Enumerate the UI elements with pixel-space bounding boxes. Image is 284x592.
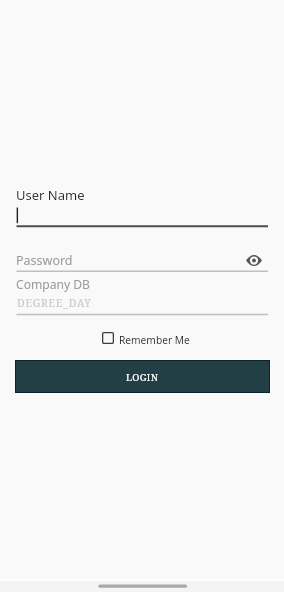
button[interactable]: Remember Me <box>100 330 190 346</box>
button[interactable]: Show password <box>242 249 266 270</box>
staticText: User Name <box>16 186 85 204</box>
staticText: Password <box>16 252 73 269</box>
staticText: DEGREE_DAY <box>17 296 92 310</box>
staticText: Company DB <box>16 276 90 292</box>
button[interactable]: Password <box>16 252 268 273</box>
button[interactable]: User Name <box>16 186 268 228</box>
button[interactable]: LOGIN <box>15 360 270 393</box>
staticText: Remember Me <box>119 333 190 347</box>
button[interactable]: Company DB <box>16 276 268 316</box>
staticText: LOGIN <box>126 371 159 384</box>
